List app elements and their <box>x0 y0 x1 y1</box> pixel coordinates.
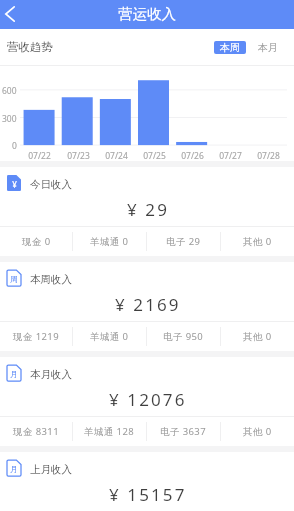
staticText: 本周收入 <box>30 273 72 286</box>
button[interactable]: 现金 8311 <box>0 417 72 446</box>
staticText: 现金 8311 <box>13 425 60 438</box>
button[interactable]: 羊城通 128 <box>73 417 146 446</box>
staticText: 电子 950 <box>163 330 204 343</box>
staticText: 羊城通 128 <box>84 425 135 438</box>
staticText: 0 <box>12 140 17 152</box>
staticText: ¥ 15157 <box>109 483 187 506</box>
staticText: 07/27 <box>219 150 242 162</box>
button[interactable]: 电子 3637 <box>147 417 220 446</box>
button[interactable]: 本月 <box>258 41 278 54</box>
staticText: 07/25 <box>143 150 166 162</box>
staticText: 月 <box>10 369 18 379</box>
staticText: 本月收入 <box>30 368 72 381</box>
staticText: 600 <box>2 85 17 97</box>
staticText: 07/22 <box>28 150 51 162</box>
staticText: 其他 0 <box>243 235 272 248</box>
staticText: 周 <box>10 274 18 284</box>
staticText: ¥ 12076 <box>109 388 187 411</box>
button[interactable]: 本周 <box>214 41 246 54</box>
staticText: 本月 <box>258 41 278 54</box>
button[interactable]: 电子 29 <box>147 227 220 256</box>
staticText: 上月收入 <box>30 463 72 476</box>
staticText: 电子 3637 <box>160 425 207 438</box>
button[interactable]: 现金 1219 <box>0 322 72 351</box>
button[interactable]: 电子 950 <box>147 322 220 351</box>
button[interactable]: Back <box>0 0 20 29</box>
staticText: 07/24 <box>105 150 128 162</box>
staticText: ¥ 2169 <box>115 293 181 316</box>
button[interactable]: 其他 0 <box>221 417 294 446</box>
staticText: ¥ 29 <box>127 198 169 221</box>
staticText: 现金 1219 <box>13 330 60 343</box>
staticText: 羊城通 0 <box>90 330 129 343</box>
staticText: 月 <box>10 464 18 474</box>
button[interactable]: 其他 0 <box>221 227 294 256</box>
button[interactable]: 其他 0 <box>221 322 294 351</box>
staticText: 营运收入 <box>118 5 176 23</box>
staticText: 本周 <box>220 41 240 54</box>
button[interactable]: 现金 0 <box>0 227 72 256</box>
staticText: 07/28 <box>257 150 280 162</box>
staticText: 其他 0 <box>243 425 272 438</box>
staticText: 07/23 <box>67 150 90 162</box>
button[interactable]: 羊城通 0 <box>73 227 146 256</box>
staticText: 07/26 <box>181 150 204 162</box>
button[interactable]: 羊城通 0 <box>73 322 146 351</box>
staticText: 300 <box>2 113 17 125</box>
staticText: 电子 29 <box>166 235 201 248</box>
staticText: 其他 0 <box>243 330 272 343</box>
staticText: 营收趋势 <box>7 40 53 54</box>
staticText: ¥ <box>12 179 17 190</box>
staticText: 现金 0 <box>22 235 51 248</box>
staticText: 今日收入 <box>30 178 72 191</box>
staticText: 羊城通 0 <box>90 235 129 248</box>
